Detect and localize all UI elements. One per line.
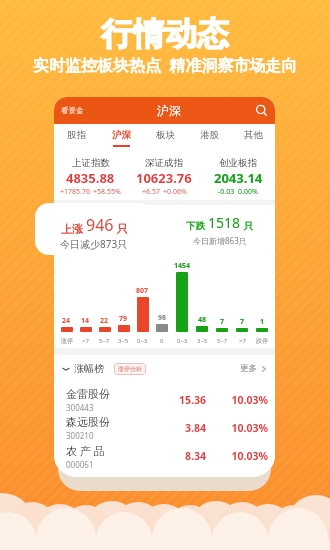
staticText: 其他 — [244, 129, 263, 141]
staticText: 沪深 — [112, 129, 131, 141]
staticText: 0 — [160, 337, 164, 345]
staticText: 2043.14 — [214, 169, 263, 187]
staticText: 1518 — [208, 213, 241, 232]
staticText: +6.57 — [142, 187, 160, 197]
staticText: 98 — [158, 313, 167, 323]
staticText: 涨幅榜 — [74, 362, 104, 375]
button[interactable]: 其他 — [231, 124, 275, 147]
button[interactable]: 创业板指 — [201, 147, 275, 200]
staticText: 5~7 — [217, 337, 228, 345]
staticText: 更多 — [240, 363, 257, 374]
button[interactable]: 上证指数 — [54, 147, 127, 200]
staticText: 3.84 — [152, 421, 206, 435]
staticText: 3~5 — [197, 337, 208, 345]
staticText: 10623.76 — [136, 169, 192, 187]
staticText: >7 — [239, 337, 246, 345]
staticText: 涨停 — [61, 337, 73, 345]
staticText: 5~7 — [99, 337, 110, 345]
button[interactable]: 板块 — [143, 124, 187, 147]
staticText: 24 — [62, 316, 71, 326]
button[interactable]: 更多 — [240, 363, 267, 374]
staticText: 14 — [81, 316, 90, 326]
staticText: 行情动态 — [101, 14, 229, 54]
staticText: +0.06% — [163, 187, 187, 197]
staticText: 7 — [240, 317, 245, 327]
staticText: 8.34 — [152, 449, 206, 463]
button[interactable]: 股指 — [54, 124, 99, 147]
staticText: 港股 — [200, 129, 219, 141]
staticText: 0~3 — [177, 337, 188, 345]
staticText: 今日新增863只 — [193, 235, 247, 246]
staticText: 300443 — [66, 402, 94, 413]
staticText: 7 — [220, 317, 225, 327]
staticText: +1785.76 — [60, 187, 90, 197]
staticText: 48 — [198, 315, 207, 325]
staticText: 10.03% — [206, 393, 268, 407]
staticText: 森远股份 — [66, 415, 110, 429]
staticText: 3~5 — [118, 337, 129, 345]
staticText: +58.55% — [93, 187, 121, 197]
staticText: 股指 — [67, 129, 86, 141]
staticText: 10.03% — [206, 449, 268, 463]
staticText: 上证指数 — [72, 157, 110, 169]
staticText: -0.03 — [218, 187, 235, 197]
staticText: 000061 — [66, 459, 94, 470]
button[interactable]: 森远股份 — [54, 414, 275, 442]
staticText: 946 — [86, 214, 114, 236]
staticText: 上涨 — [61, 221, 86, 236]
staticText: 300210 — [66, 430, 94, 441]
staticText: 创业板指 — [219, 157, 257, 169]
staticText: 1454 — [174, 261, 191, 271]
staticText: 807 — [136, 286, 149, 296]
button[interactable]: 深证成指 — [127, 147, 201, 200]
staticText: 只 — [241, 219, 253, 232]
staticText: 1 — [260, 317, 265, 327]
staticText: 今日减少873只 — [60, 237, 128, 251]
staticText: 10.03% — [206, 421, 268, 435]
staticText: 4835.88 — [66, 169, 115, 187]
button[interactable]: 沪深 — [99, 124, 143, 147]
button[interactable]: 港股 — [187, 124, 231, 147]
staticText: 农 产 品 — [66, 443, 105, 458]
staticText: 板块 — [156, 129, 175, 141]
button[interactable]: 看资金 — [61, 106, 84, 115]
staticText: 沪深 — [157, 103, 181, 118]
staticText: >7 — [82, 337, 89, 345]
staticText: 22 — [100, 316, 109, 326]
staticText: 金雷股份 — [66, 387, 110, 401]
staticText: 实时监控板块热点 精准洞察市场走向 — [33, 54, 298, 76]
button[interactable]: 涨停分析 — [118, 365, 142, 373]
staticText: 只 — [114, 221, 128, 236]
button[interactable]: Search — [255, 104, 268, 117]
staticText: 跌停 — [256, 337, 268, 345]
staticText: 79 — [119, 314, 128, 324]
staticText: 0~3 — [137, 337, 148, 345]
button[interactable]: 农 产 品 — [54, 442, 275, 470]
button[interactable]: 金雷股份 — [54, 386, 275, 414]
staticText: 15.36 — [152, 393, 206, 407]
button[interactable]: 下跌 — [164, 205, 275, 253]
button[interactable]: 上涨 — [35, 203, 153, 255]
staticText: 涨停分析 — [118, 365, 142, 373]
staticText: 深证成指 — [145, 157, 183, 169]
staticText: 下跌 — [186, 219, 208, 232]
staticText: 0.00% — [238, 187, 258, 197]
